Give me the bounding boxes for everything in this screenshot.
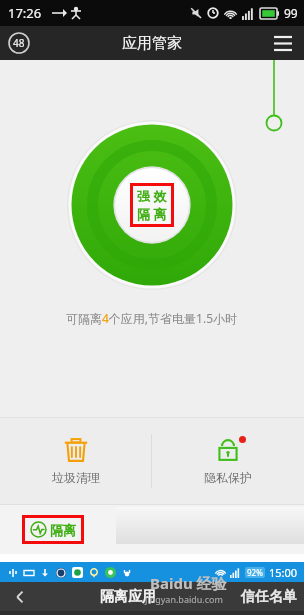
staticText: 99 (284, 5, 298, 21)
staticText: 应用管家 (122, 34, 182, 53)
staticText: 92% (247, 567, 263, 578)
button[interactable]: 信任名单 (241, 588, 297, 606)
staticText: 隔离 (50, 522, 76, 538)
button[interactable]: 我的应用 (102, 504, 203, 554)
staticText: Baidu 经验 (150, 573, 227, 593)
staticText: 隔 离 (137, 205, 167, 223)
button[interactable]: Menu (270, 30, 296, 56)
button[interactable]: 隐私保护 (152, 418, 304, 504)
staticText: jingyan.baidu.com (145, 593, 223, 605)
button[interactable]: Back (10, 587, 30, 607)
staticText: 垃圾清理 (52, 470, 100, 485)
button[interactable]: 隔离 (0, 504, 102, 554)
staticText: 15:00 (269, 565, 298, 580)
button[interactable]: 强 效 (137, 187, 167, 223)
staticText: 17:26 (8, 4, 42, 22)
staticText: 隐私保护 (204, 470, 252, 485)
button[interactable]: Apps count 48 (8, 32, 30, 54)
button[interactable]: 垃圾清理 (0, 418, 151, 504)
staticText: 我的应用 (136, 521, 188, 537)
staticText: 48 (13, 36, 25, 50)
staticText: 隔离应用 (100, 588, 156, 606)
staticText: 强 效 (137, 187, 167, 205)
staticText: 可隔离4个应用,节省电量1.5小时 (66, 310, 238, 326)
